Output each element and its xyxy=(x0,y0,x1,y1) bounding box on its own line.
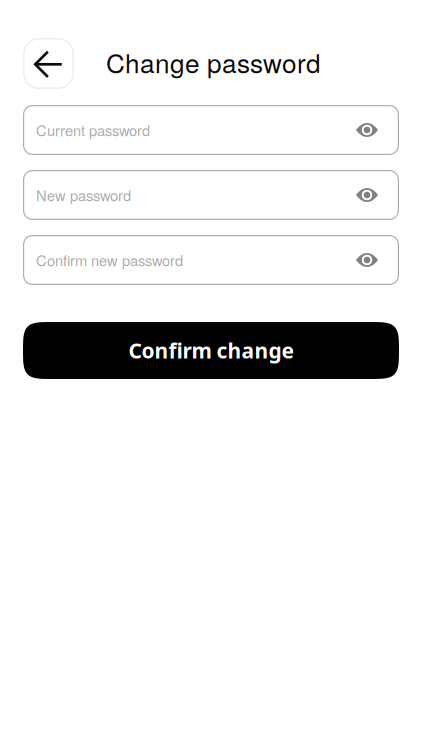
button[interactable]: Show New password xyxy=(347,173,387,217)
staticText: Current password xyxy=(36,119,150,140)
button[interactable]: Show Current password xyxy=(347,108,387,152)
staticText: Change password xyxy=(106,43,321,81)
staticText: Confirm change xyxy=(128,336,293,365)
button[interactable]: Back xyxy=(23,38,74,89)
staticText: New password xyxy=(36,184,131,205)
button[interactable]: Show Confirm new password xyxy=(347,238,387,282)
button[interactable]: Confirm change xyxy=(23,322,399,379)
staticText: Confirm new password xyxy=(36,249,183,270)
